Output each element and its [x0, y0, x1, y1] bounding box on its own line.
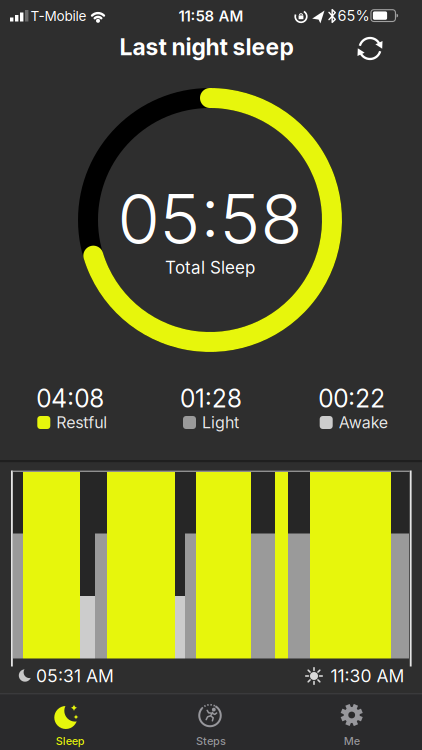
- button[interactable]: Sleep: [35, 694, 105, 750]
- staticText: Light: [202, 413, 239, 432]
- staticText: Awake: [339, 413, 388, 432]
- staticText: 11:30 AM: [330, 665, 404, 687]
- staticText: Sleep: [56, 734, 85, 748]
- staticText: 01:28: [180, 384, 242, 413]
- button[interactable]: Me: [317, 694, 387, 750]
- button[interactable]: Steps: [176, 694, 246, 750]
- staticText: 11:58 AM: [178, 7, 243, 25]
- staticText: Last night sleep: [119, 33, 293, 61]
- staticText: 65%: [337, 7, 369, 24]
- button[interactable]: Refresh: [353, 31, 387, 65]
- staticText: 05:58: [117, 178, 302, 260]
- staticText: Me: [344, 734, 360, 748]
- staticText: 05:31 AM: [36, 665, 114, 687]
- staticText: 04:08: [36, 384, 104, 413]
- staticText: Restful: [56, 413, 107, 432]
- staticText: Steps: [196, 734, 226, 748]
- staticText: 00:22: [318, 384, 385, 413]
- staticText: T-Mobile: [30, 8, 86, 24]
- staticText: Total Sleep: [165, 257, 255, 278]
